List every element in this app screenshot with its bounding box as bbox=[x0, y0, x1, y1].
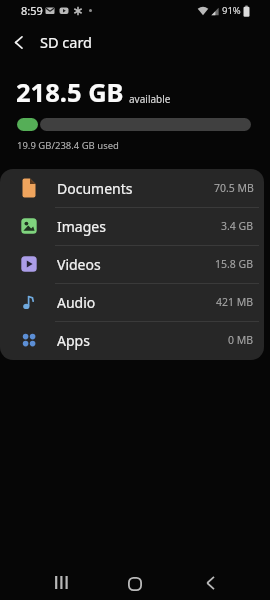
staticText: Documents bbox=[57, 179, 133, 198]
staticText: 421 MB bbox=[216, 295, 254, 309]
button[interactable]: Images bbox=[0, 207, 264, 245]
button[interactable] bbox=[197, 569, 225, 597]
staticText: Images bbox=[57, 217, 106, 236]
button[interactable]: Documents bbox=[0, 169, 264, 207]
staticText: 3.4 GB bbox=[221, 219, 254, 233]
staticText: 91% bbox=[222, 4, 241, 17]
staticText: 218.5 GB bbox=[16, 75, 124, 110]
staticText: 70.5 MB bbox=[214, 181, 254, 195]
button[interactable] bbox=[121, 570, 149, 598]
staticText: Videos bbox=[57, 255, 101, 274]
button[interactable]: Audio bbox=[0, 283, 264, 321]
staticText: 19.9 GB/238.4 GB used bbox=[17, 139, 119, 152]
staticText: available bbox=[129, 92, 171, 106]
staticText: Apps bbox=[57, 331, 90, 350]
staticText: 15.8 GB bbox=[215, 257, 254, 271]
button[interactable] bbox=[47, 568, 75, 596]
staticText: 8:59 bbox=[21, 3, 43, 18]
button[interactable]: Apps bbox=[0, 321, 264, 359]
button[interactable] bbox=[7, 30, 31, 54]
staticText: 0 MB bbox=[228, 333, 254, 347]
staticText: SD card bbox=[40, 32, 93, 52]
staticText: Audio bbox=[57, 293, 96, 312]
button[interactable]: Videos bbox=[0, 245, 264, 283]
